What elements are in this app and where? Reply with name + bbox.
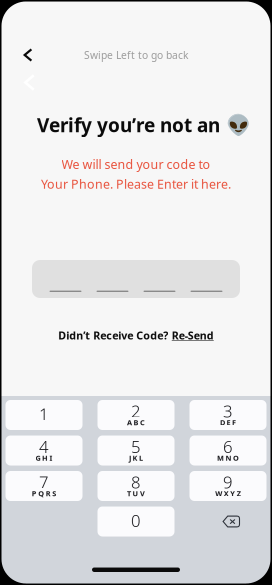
staticText: MNO [217, 453, 239, 463]
staticText: Your Phone. Please Enter it here. [41, 175, 231, 192]
staticText: Verify you’re not an [37, 112, 220, 138]
button[interactable]: Back [13, 43, 43, 67]
staticText: 4 [39, 435, 49, 458]
staticText: JKL [129, 453, 143, 463]
staticText: 👽 [226, 113, 251, 137]
button[interactable]: 9 [189, 471, 266, 501]
staticText: 2 [131, 400, 141, 422]
staticText: 3 [223, 400, 233, 422]
button[interactable]: 3 [189, 400, 266, 430]
staticText: GHI [35, 453, 52, 463]
button[interactable]: Delete [189, 506, 266, 536]
staticText: Swipe Left to go back [84, 48, 188, 62]
button[interactable]: 4 [5, 435, 82, 465]
staticText: 9 [223, 471, 233, 493]
staticText: Didn’t Receive Code? [58, 328, 168, 342]
staticText: 0 [131, 509, 141, 532]
staticText: PQRS [32, 488, 56, 498]
staticText: TUV [127, 488, 145, 498]
staticText: DEF [220, 417, 236, 427]
staticText: ABC [127, 417, 145, 427]
staticText: WXYZ [215, 488, 241, 498]
button[interactable]: 2 [97, 400, 174, 430]
button[interactable]: 1 [5, 400, 82, 430]
staticText: 1 [39, 403, 49, 425]
button[interactable]: 6 [189, 435, 266, 465]
button[interactable]: 5 [97, 435, 174, 465]
button[interactable]: 7 [5, 471, 82, 501]
staticText: 7 [39, 471, 49, 493]
staticText: 6 [223, 435, 233, 458]
staticText: Re-Send [172, 328, 214, 342]
staticText: We will send your code to [61, 156, 210, 173]
button[interactable]: Didn’t Receive Code? [50, 322, 222, 348]
button[interactable]: 8 [97, 471, 174, 501]
staticText: 8 [131, 471, 141, 493]
staticText: 5 [131, 435, 141, 458]
button[interactable]: 0 [97, 506, 174, 536]
